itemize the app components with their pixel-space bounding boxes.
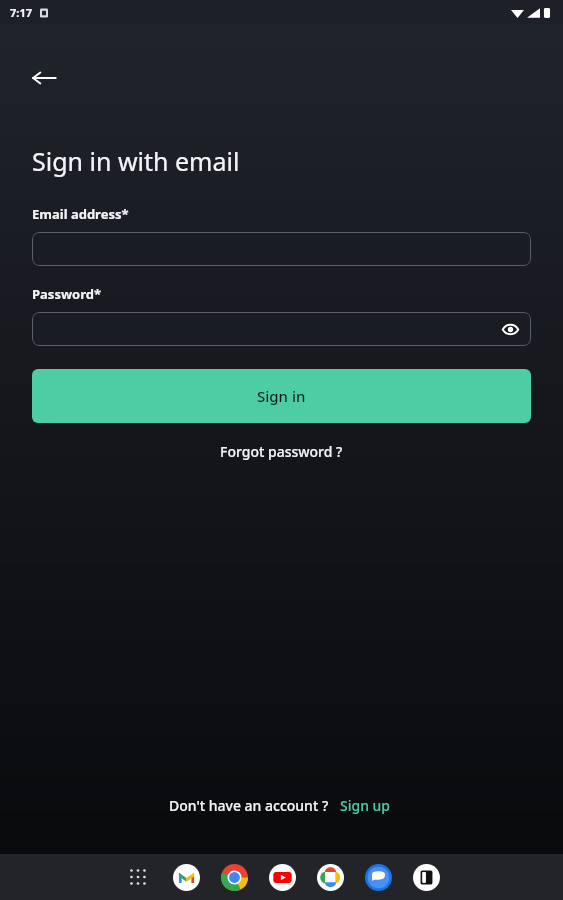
button[interactable]: Gmail: [170, 861, 202, 893]
button[interactable]: Sign in: [32, 369, 531, 423]
button[interactable]: Back: [20, 54, 68, 102]
staticText: Forgot password ?: [220, 442, 343, 461]
button[interactable]: All apps: [122, 861, 154, 893]
button[interactable]: Forgot password ?: [212, 438, 351, 465]
staticText: Sign up: [340, 796, 391, 815]
staticText: Password*: [32, 285, 101, 303]
button[interactable]: Show password: [32, 312, 531, 346]
staticText: Don't have an account ?: [169, 796, 329, 815]
button[interactable]: Sign up: [337, 793, 394, 818]
button[interactable]: Show password: [497, 316, 523, 342]
button[interactable]: Messages: [362, 861, 394, 893]
button[interactable]: Chrome: [218, 861, 250, 893]
button[interactable]: Calculator: [410, 861, 442, 893]
staticText: Sign in with email: [32, 144, 240, 178]
button[interactable]: [32, 232, 531, 266]
staticText: 7:17: [10, 5, 32, 20]
button[interactable]: Photos: [314, 861, 346, 893]
staticText: Email address*: [32, 205, 129, 223]
staticText: Sign in: [257, 386, 306, 406]
button[interactable]: YouTube: [266, 861, 298, 893]
